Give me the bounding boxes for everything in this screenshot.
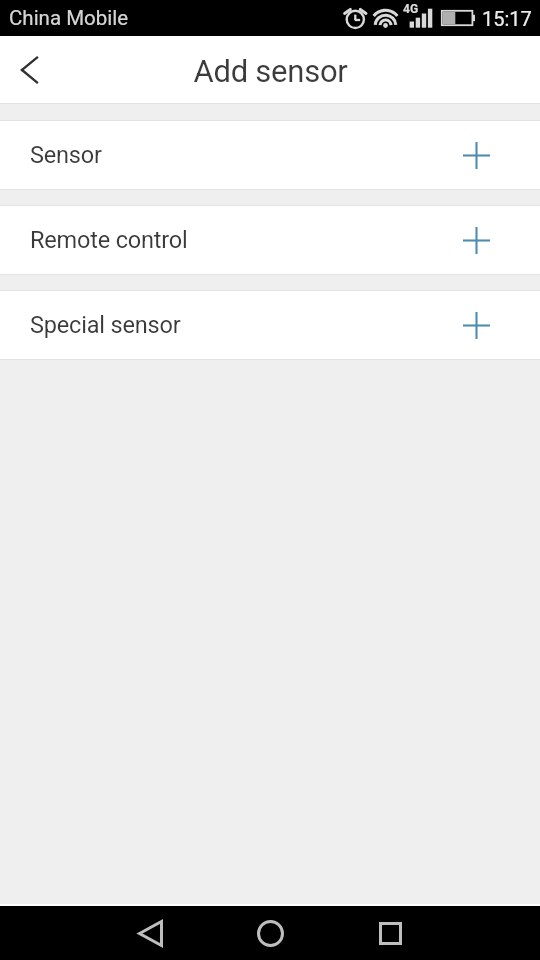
staticText: Add sensor	[193, 53, 348, 89]
button[interactable]: Home	[230, 906, 310, 960]
button[interactable]: Recent apps	[350, 906, 430, 960]
button[interactable]: Remote control	[0, 206, 540, 274]
button[interactable]: Special sensor	[0, 291, 540, 359]
staticText: Sensor	[30, 141, 102, 169]
button[interactable]: Back	[0, 41, 58, 99]
staticText: 4G	[403, 2, 419, 16]
staticText: 15:17	[482, 7, 532, 30]
button[interactable]: Sensor	[0, 121, 540, 189]
button[interactable]: Back	[110, 906, 190, 960]
staticText: Special sensor	[30, 311, 181, 339]
staticText: Remote control	[30, 226, 188, 254]
staticText: China Mobile	[9, 6, 129, 30]
